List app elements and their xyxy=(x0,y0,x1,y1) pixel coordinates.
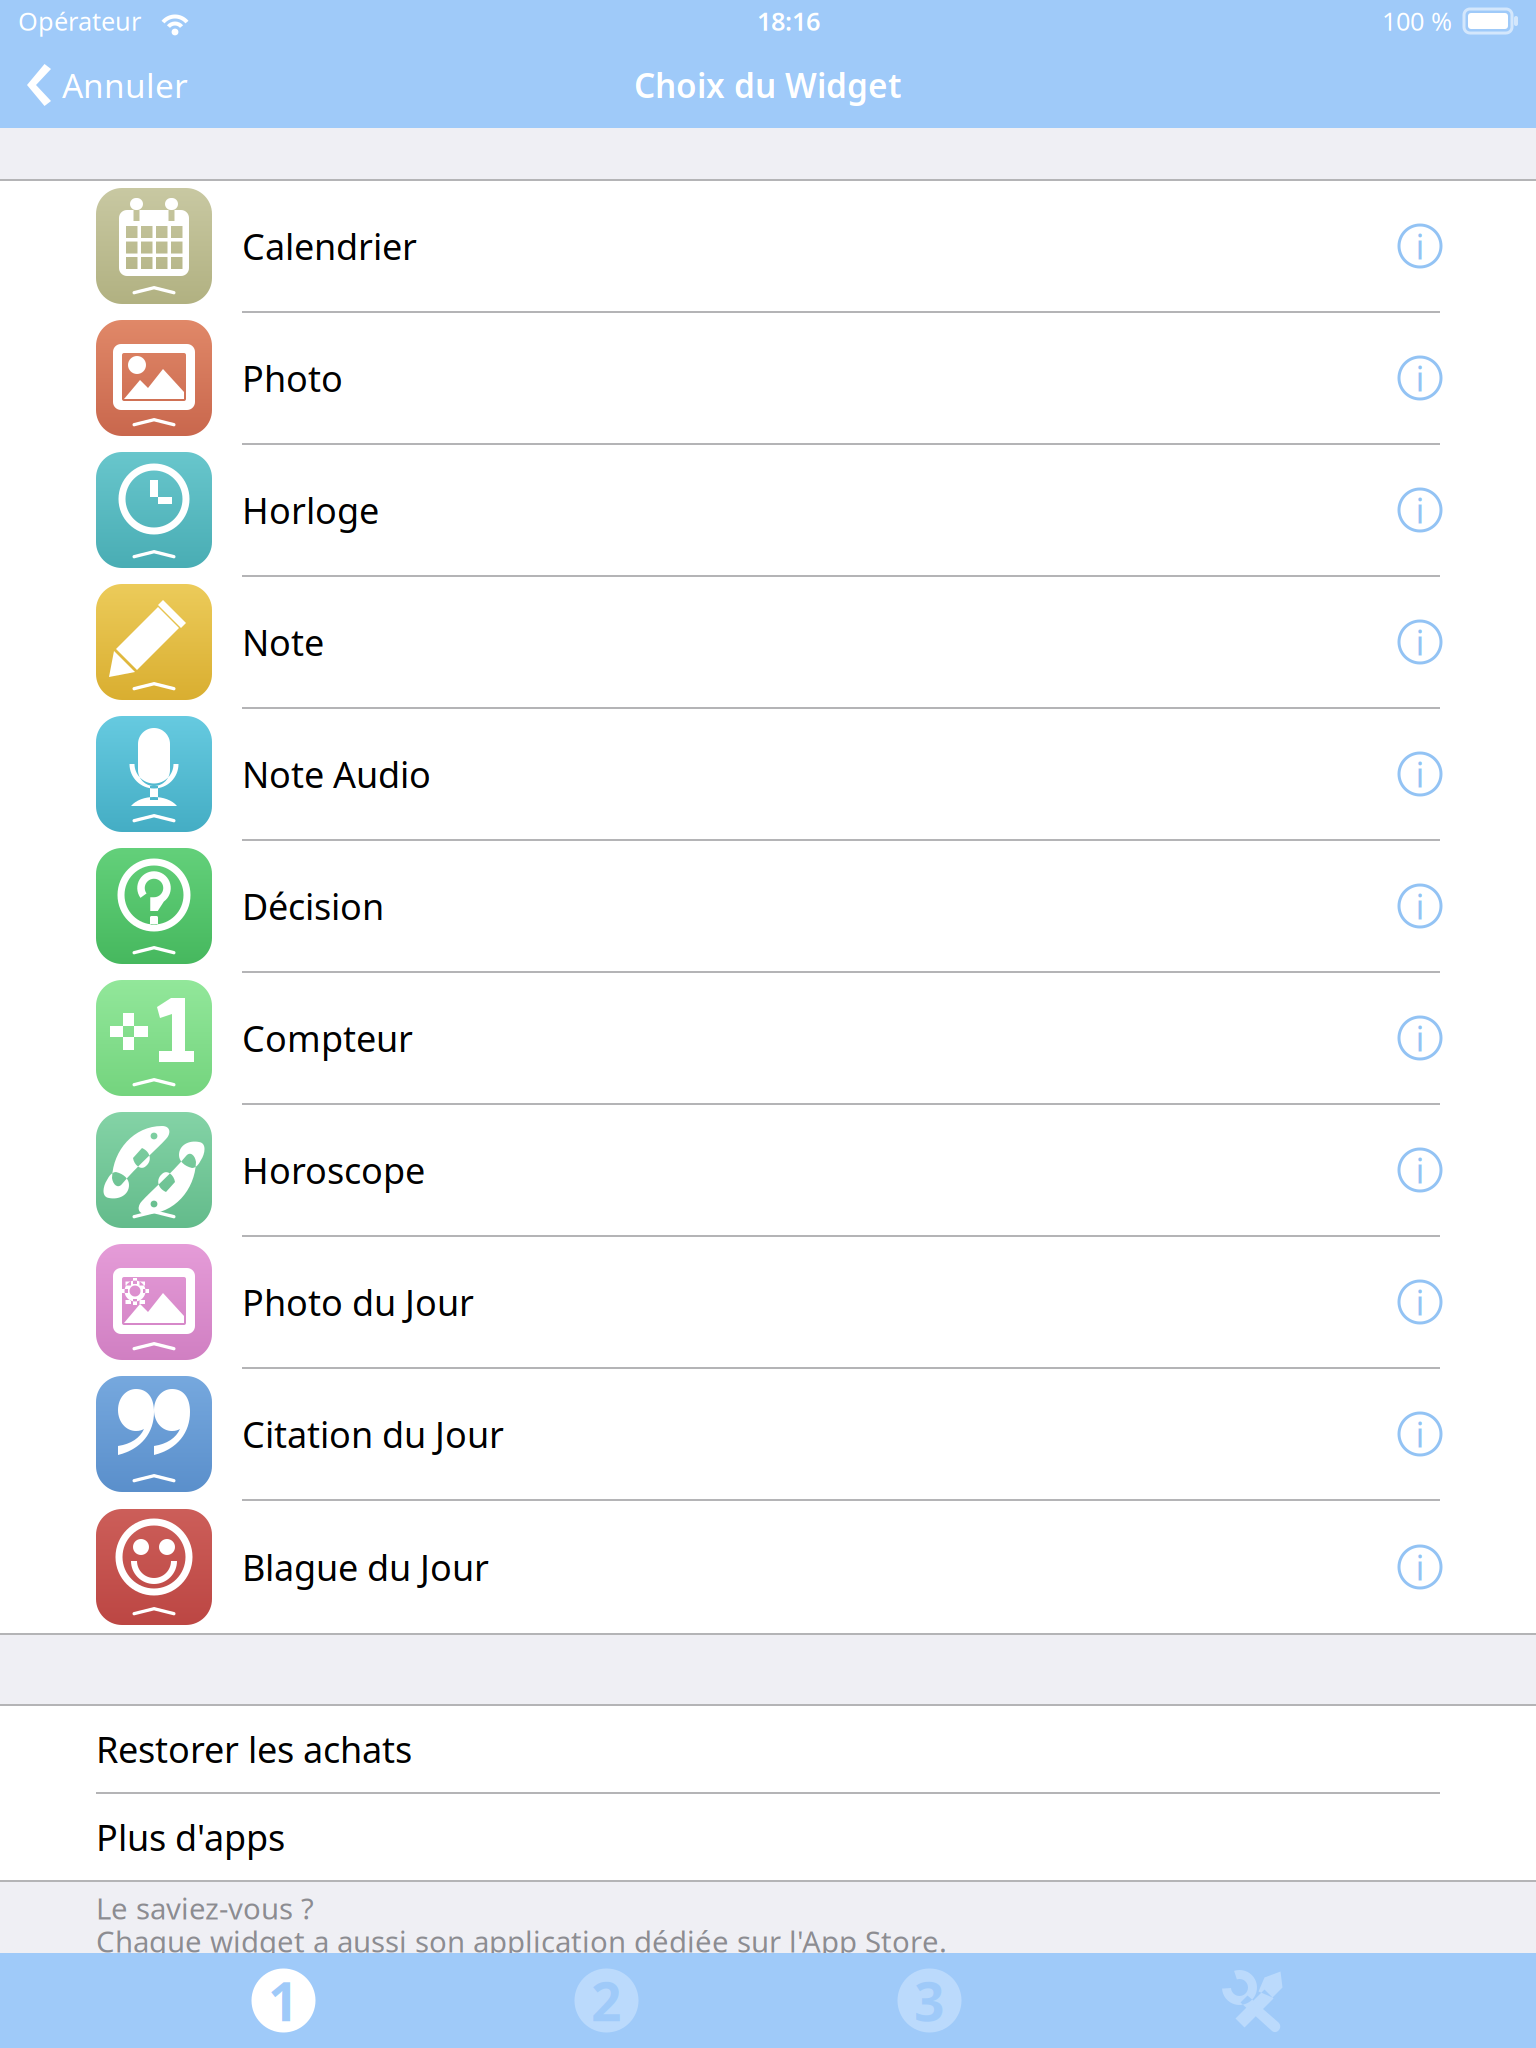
staticText: Choix du Widget xyxy=(634,63,902,107)
staticText: Calendrier xyxy=(242,222,417,270)
button[interactable]: Décision xyxy=(0,841,1536,971)
button[interactable]: Informations xyxy=(1396,1543,1444,1591)
button[interactable]: Informations xyxy=(1396,1014,1444,1062)
staticText: Opérateur xyxy=(18,4,141,38)
staticText: Décision xyxy=(242,882,384,930)
staticText: Plus d'apps xyxy=(96,1813,285,1861)
staticText: 3 xyxy=(914,1965,945,2036)
staticText: i xyxy=(1415,1147,1424,1193)
staticText: Horloge xyxy=(242,486,379,534)
button[interactable]: Photo du Jour xyxy=(0,1237,1536,1367)
staticText: i xyxy=(1415,619,1424,665)
staticText: 2 xyxy=(591,1965,622,2036)
button[interactable]: Blague du Jour xyxy=(0,1501,1536,1633)
button[interactable]: Informations xyxy=(1396,354,1444,402)
staticText: i xyxy=(1415,223,1424,269)
button[interactable]: Compteur xyxy=(0,973,1536,1103)
staticText: Note xyxy=(242,618,324,666)
button[interactable]: Réglages xyxy=(1091,1953,1414,2048)
button[interactable]: Informations xyxy=(1396,1410,1444,1458)
button[interactable]: Note xyxy=(0,577,1536,707)
button[interactable]: Restorer les achats xyxy=(0,1706,1536,1792)
staticText: i xyxy=(1415,883,1424,929)
button[interactable]: Informations xyxy=(1396,618,1444,666)
button[interactable]: Citation du Jour xyxy=(0,1369,1536,1499)
staticText: 100 % xyxy=(1382,4,1452,38)
staticText: i xyxy=(1415,1015,1424,1061)
staticText: Annuler xyxy=(62,63,188,107)
staticText: Horoscope xyxy=(242,1146,425,1194)
button[interactable]: Note Audio xyxy=(0,709,1536,839)
staticText: i xyxy=(1415,487,1424,533)
staticText: Citation du Jour xyxy=(242,1410,504,1458)
button[interactable]: Informations xyxy=(1396,750,1444,798)
button[interactable]: Informations xyxy=(1396,222,1444,270)
button[interactable]: Informations xyxy=(1396,1278,1444,1326)
staticText: Restorer les achats xyxy=(96,1725,412,1773)
staticText: i xyxy=(1415,355,1424,401)
staticText: 18:16 xyxy=(757,4,820,38)
staticText: Photo du Jour xyxy=(242,1278,474,1326)
button[interactable]: Horloge xyxy=(0,445,1536,575)
button[interactable]: Onglet 3 xyxy=(768,1953,1091,2048)
staticText: i xyxy=(1415,1411,1424,1457)
staticText: 1 xyxy=(268,1965,299,2036)
button[interactable]: Plus d'apps xyxy=(0,1794,1536,1880)
button[interactable]: Photo xyxy=(0,313,1536,443)
staticText: Chaque widget a aussi son application dé… xyxy=(96,1921,947,1960)
button[interactable]: Horoscope xyxy=(0,1105,1536,1235)
button[interactable]: Onglet 2 xyxy=(445,1953,768,2048)
button[interactable]: Informations xyxy=(1396,1146,1444,1194)
staticText: Note Audio xyxy=(242,750,431,798)
staticText: Blague du Jour xyxy=(242,1543,489,1591)
button[interactable]: Onglet 1 xyxy=(122,1953,445,2048)
button[interactable]: Informations xyxy=(1396,882,1444,930)
staticText: i xyxy=(1415,751,1424,797)
button[interactable]: Calendrier xyxy=(0,181,1536,311)
button[interactable]: Informations xyxy=(1396,486,1444,534)
staticText: Photo xyxy=(242,354,343,402)
staticText: i xyxy=(1415,1279,1424,1325)
staticText: i xyxy=(1415,1544,1424,1590)
staticText: Compteur xyxy=(242,1014,413,1062)
staticText: Le saviez-vous ? xyxy=(96,1888,314,1927)
button[interactable]: Annuler xyxy=(0,42,188,128)
